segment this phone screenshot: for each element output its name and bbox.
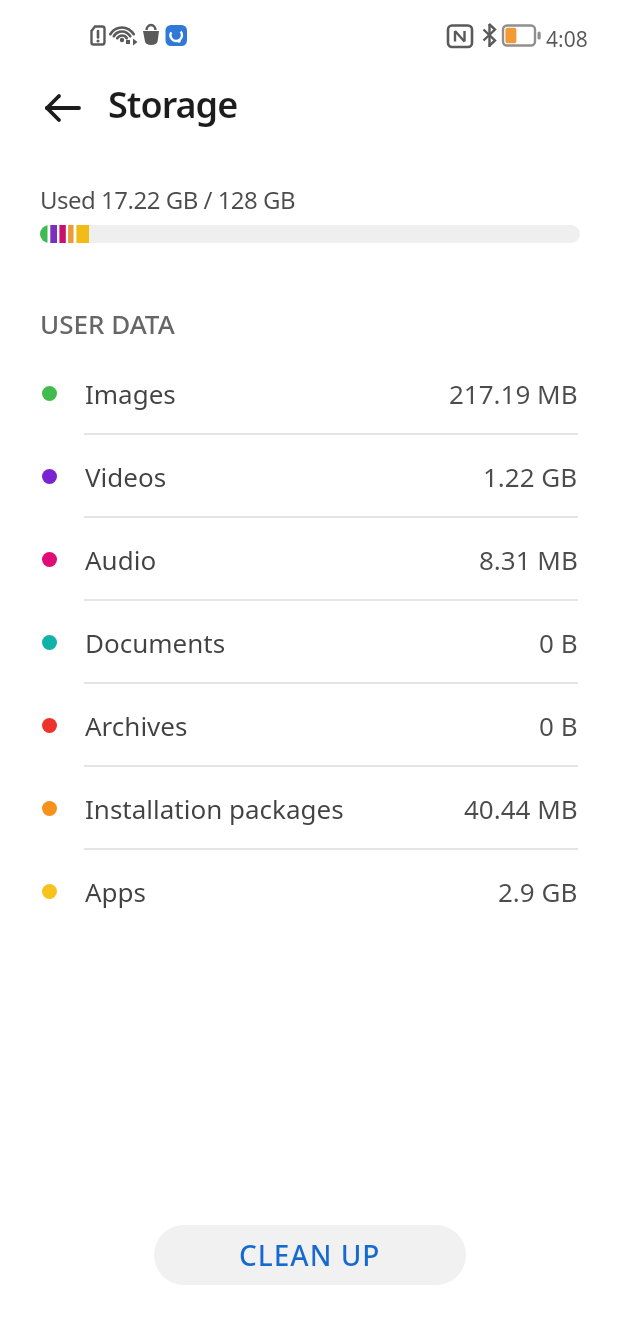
staticText: CLEAN UP [239, 1236, 381, 1274]
staticText: Apps [85, 874, 147, 909]
staticText: 8.31 MB [479, 542, 578, 577]
staticText: Documents [85, 625, 226, 660]
staticText: 1.22 GB [483, 459, 578, 494]
button[interactable]: Images [0, 352, 620, 435]
staticText: USER DATA [40, 306, 175, 341]
staticText: Used 17.22 GB / 128 GB [40, 183, 296, 216]
staticText: 0 B [539, 625, 578, 660]
staticText: 40.44 MB [464, 791, 578, 826]
staticText: Archives [85, 708, 188, 743]
button[interactable] [35, 84, 91, 132]
staticText: Storage [108, 80, 238, 129]
button[interactable]: Archives [0, 684, 620, 767]
staticText: 0 B [539, 708, 578, 743]
button[interactable]: Documents [0, 601, 620, 684]
staticText: Installation packages [85, 791, 344, 826]
staticText: 2.9 GB [498, 874, 578, 909]
button[interactable]: Apps [0, 850, 620, 933]
button[interactable]: Videos [0, 435, 620, 518]
staticText: 217.19 MB [449, 376, 578, 411]
button[interactable]: Audio [0, 518, 620, 601]
button[interactable]: CLEAN UP [154, 1225, 466, 1285]
staticText: Images [85, 376, 176, 411]
button[interactable]: Installation packages [0, 767, 620, 850]
staticText: Audio [85, 542, 157, 577]
staticText: Videos [85, 459, 167, 494]
staticText: 4:08 [546, 25, 588, 54]
